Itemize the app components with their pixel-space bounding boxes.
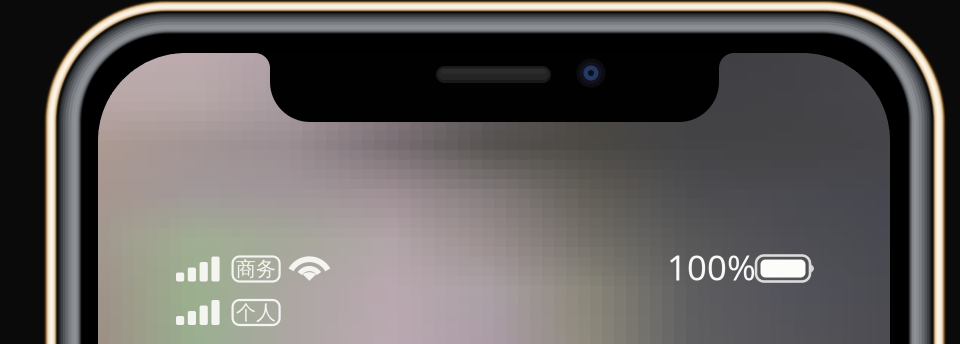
staticText: 100% xyxy=(667,244,756,290)
staticText: 个人 xyxy=(236,300,276,325)
staticText: 商务 xyxy=(236,257,276,281)
